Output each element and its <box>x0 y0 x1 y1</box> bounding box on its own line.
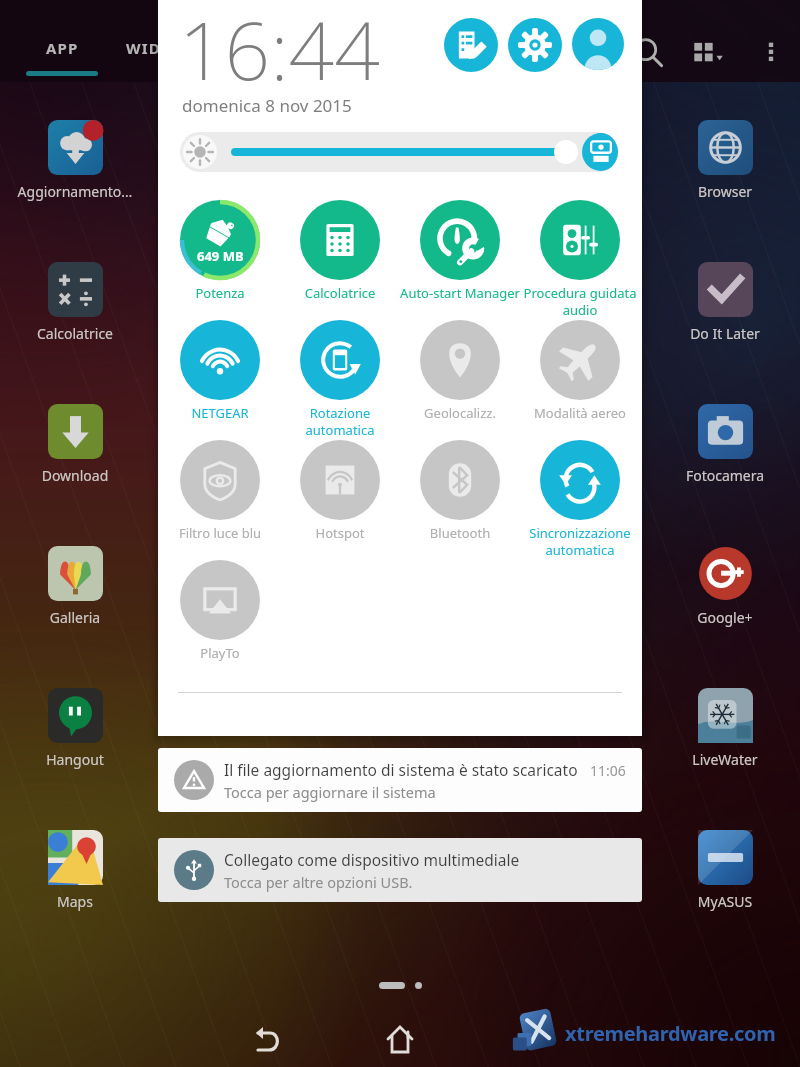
button[interactable]: Download <box>13 404 137 485</box>
staticText: Fotocamera <box>663 466 787 485</box>
button[interactable]: Maps <box>13 830 137 911</box>
button[interactable]: Browser <box>663 120 787 201</box>
button[interactable]: LiveWater <box>663 688 787 769</box>
staticText: Potenza <box>161 284 279 302</box>
button[interactable]: Auto-start Manager <box>420 200 500 280</box>
button[interactable]: Edit quick settings <box>444 18 498 72</box>
staticText: Il file aggiornamento di sistema è stato… <box>224 759 578 780</box>
button[interactable]: Do It Later <box>663 262 787 343</box>
staticText: WID <box>126 38 161 58</box>
staticText: PlayTo <box>161 644 279 662</box>
staticText: Hotspot <box>281 524 399 542</box>
staticText: Auto-start Manager <box>390 284 530 302</box>
staticText: Sincronizzazione automatica <box>514 524 646 559</box>
staticText: Calcolatrice <box>13 324 137 343</box>
button[interactable]: Aggiornamento… <box>13 120 137 201</box>
button[interactable]: Geolocalizz. <box>420 320 500 400</box>
staticText: Bluetooth <box>401 524 519 542</box>
button[interactable]: Grid view <box>686 30 732 76</box>
button[interactable]: Galleria <box>13 546 137 627</box>
staticText: Tocca per altre opzioni USB. <box>224 872 413 892</box>
button[interactable]: Auto brightness <box>582 133 618 171</box>
staticText: Filtro luce blu <box>161 524 279 542</box>
staticText: domenica 8 nov 2015 <box>182 94 352 117</box>
staticText: LiveWater <box>663 750 787 769</box>
staticText: Modalità aereo <box>521 404 639 422</box>
staticText: Do It Later <box>663 324 787 343</box>
button[interactable]: Rotazione automatica <box>300 320 380 400</box>
button[interactable]: Home <box>368 1008 432 1067</box>
staticText: NETGEAR <box>161 404 279 422</box>
staticText: Rotazione automatica <box>281 404 399 439</box>
button[interactable]: Google+ <box>663 546 787 627</box>
staticText: Collegato come dispositivo multimediale <box>224 849 520 870</box>
button[interactable]: MyASUS <box>663 830 787 911</box>
button[interactable]: Search <box>628 32 670 74</box>
button[interactable]: NETGEAR <box>180 320 260 400</box>
button[interactable]: Potenza <box>180 200 260 280</box>
staticText: APP <box>46 38 79 58</box>
staticText: Procedura guidata audio <box>514 284 646 319</box>
button[interactable]: APP <box>6 38 118 86</box>
staticText: 649 MB <box>197 247 244 265</box>
staticText: Tocca per aggiornare il sistema <box>224 782 436 802</box>
button[interactable]: User profile <box>572 18 624 70</box>
button[interactable]: Bluetooth <box>420 440 500 520</box>
staticText: Browser <box>663 182 787 201</box>
staticText: Maps <box>13 892 137 911</box>
staticText: Hangout <box>13 750 137 769</box>
staticText: 11:06 <box>590 761 626 780</box>
button[interactable]: Calcolatrice <box>300 200 380 280</box>
button[interactable]: Procedura guidata audio <box>540 200 620 280</box>
button[interactable]: Modalità aereo <box>540 320 620 400</box>
button[interactable]: PlayTo <box>180 560 260 640</box>
button[interactable]: Fotocamera <box>663 404 787 485</box>
staticText: MyASUS <box>663 892 787 911</box>
button[interactable]: More options <box>752 32 790 70</box>
staticText: Calcolatrice <box>281 284 399 302</box>
staticText: Download <box>13 466 137 485</box>
staticText: xtremehardware.com <box>565 1020 776 1047</box>
button[interactable]: Hangout <box>13 688 137 769</box>
button[interactable]: Home screen page indicator <box>379 982 422 989</box>
staticText: 16:44 <box>179 0 380 103</box>
button[interactable]: Settings <box>508 18 562 72</box>
staticText: Geolocalizz. <box>401 404 519 422</box>
staticText: Aggiornamento… <box>13 182 137 201</box>
button[interactable]: Collegato come dispositivo multimediale <box>158 838 642 902</box>
button[interactable]: WID <box>126 38 200 72</box>
staticText: Galleria <box>13 608 137 627</box>
button[interactable]: Sincronizzazione automatica <box>540 440 620 520</box>
button[interactable]: Calcolatrice <box>13 262 137 343</box>
button[interactable]: Back <box>235 1008 299 1067</box>
button[interactable]: Hotspot <box>300 440 380 520</box>
button[interactable]: Il file aggiornamento di sistema è stato… <box>158 748 642 812</box>
button[interactable]: Filtro luce blu <box>180 440 260 520</box>
staticText: Google+ <box>663 608 787 627</box>
button[interactable]: Brightness slider <box>180 132 618 172</box>
